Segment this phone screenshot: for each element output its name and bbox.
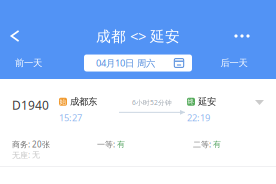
staticText: 无座: (12, 150, 32, 160)
staticText: 前一天 (15, 57, 42, 69)
staticText: 有 (213, 139, 221, 149)
staticText: D1940 (12, 97, 49, 113)
button[interactable]: 后一天 (192, 47, 276, 79)
staticText: 始 (59, 98, 66, 106)
staticText: 一等: (97, 139, 117, 150)
staticText: 成都 <> 延安 (96, 26, 180, 46)
staticText: 15:27 (59, 111, 82, 124)
button[interactable]: D1940 (0, 79, 276, 167)
staticText: 成都东 (70, 96, 97, 107)
staticText: 二等: (193, 139, 213, 150)
button[interactable]: 前一天 (0, 47, 84, 79)
staticText: 04月10日 周六 (96, 57, 155, 69)
staticText: 后一天 (220, 57, 247, 69)
staticText: 有 (117, 139, 125, 149)
staticText: 22:19 (187, 111, 210, 124)
button[interactable]: 04月10日 周六 (84, 54, 192, 71)
staticText: 无 (32, 150, 40, 160)
staticText: 6小时52分钟 (132, 98, 172, 107)
button[interactable]: More options (208, 0, 276, 47)
staticText: 商务: (12, 139, 32, 150)
staticText: 延安 (198, 96, 216, 107)
button[interactable]: Back (0, 0, 30, 47)
staticText: 20张 (32, 139, 50, 150)
staticText: 终 (187, 98, 194, 106)
